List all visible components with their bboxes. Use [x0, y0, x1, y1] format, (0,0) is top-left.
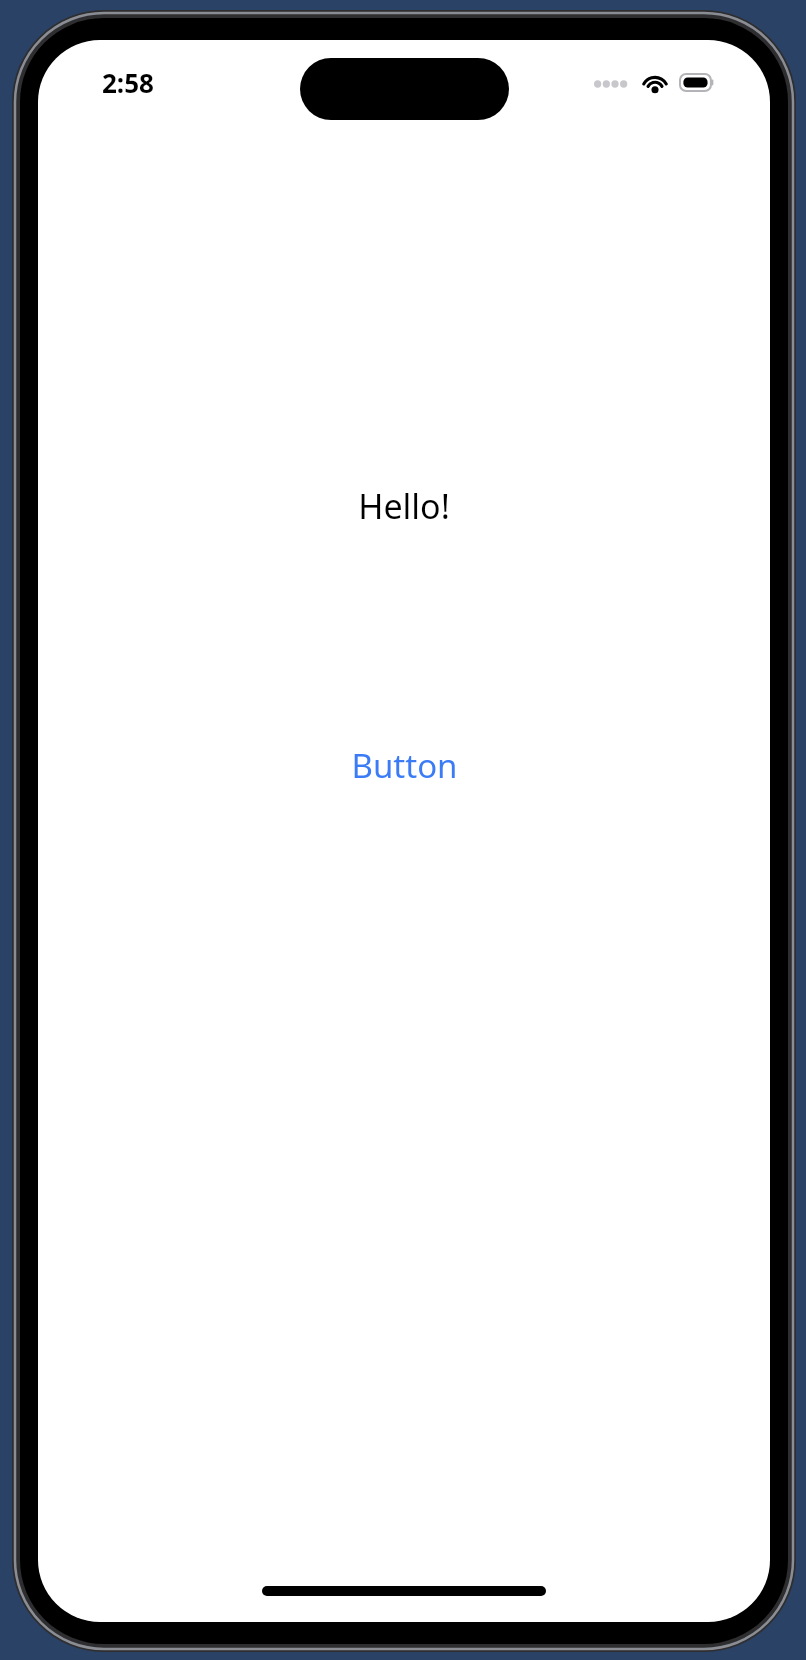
other: Home indicator	[262, 1586, 546, 1596]
staticText: Button	[351, 743, 458, 788]
button[interactable]: Button	[333, 735, 476, 796]
staticText: Hello!	[38, 483, 770, 529]
staticText: 2:58	[102, 65, 154, 100]
